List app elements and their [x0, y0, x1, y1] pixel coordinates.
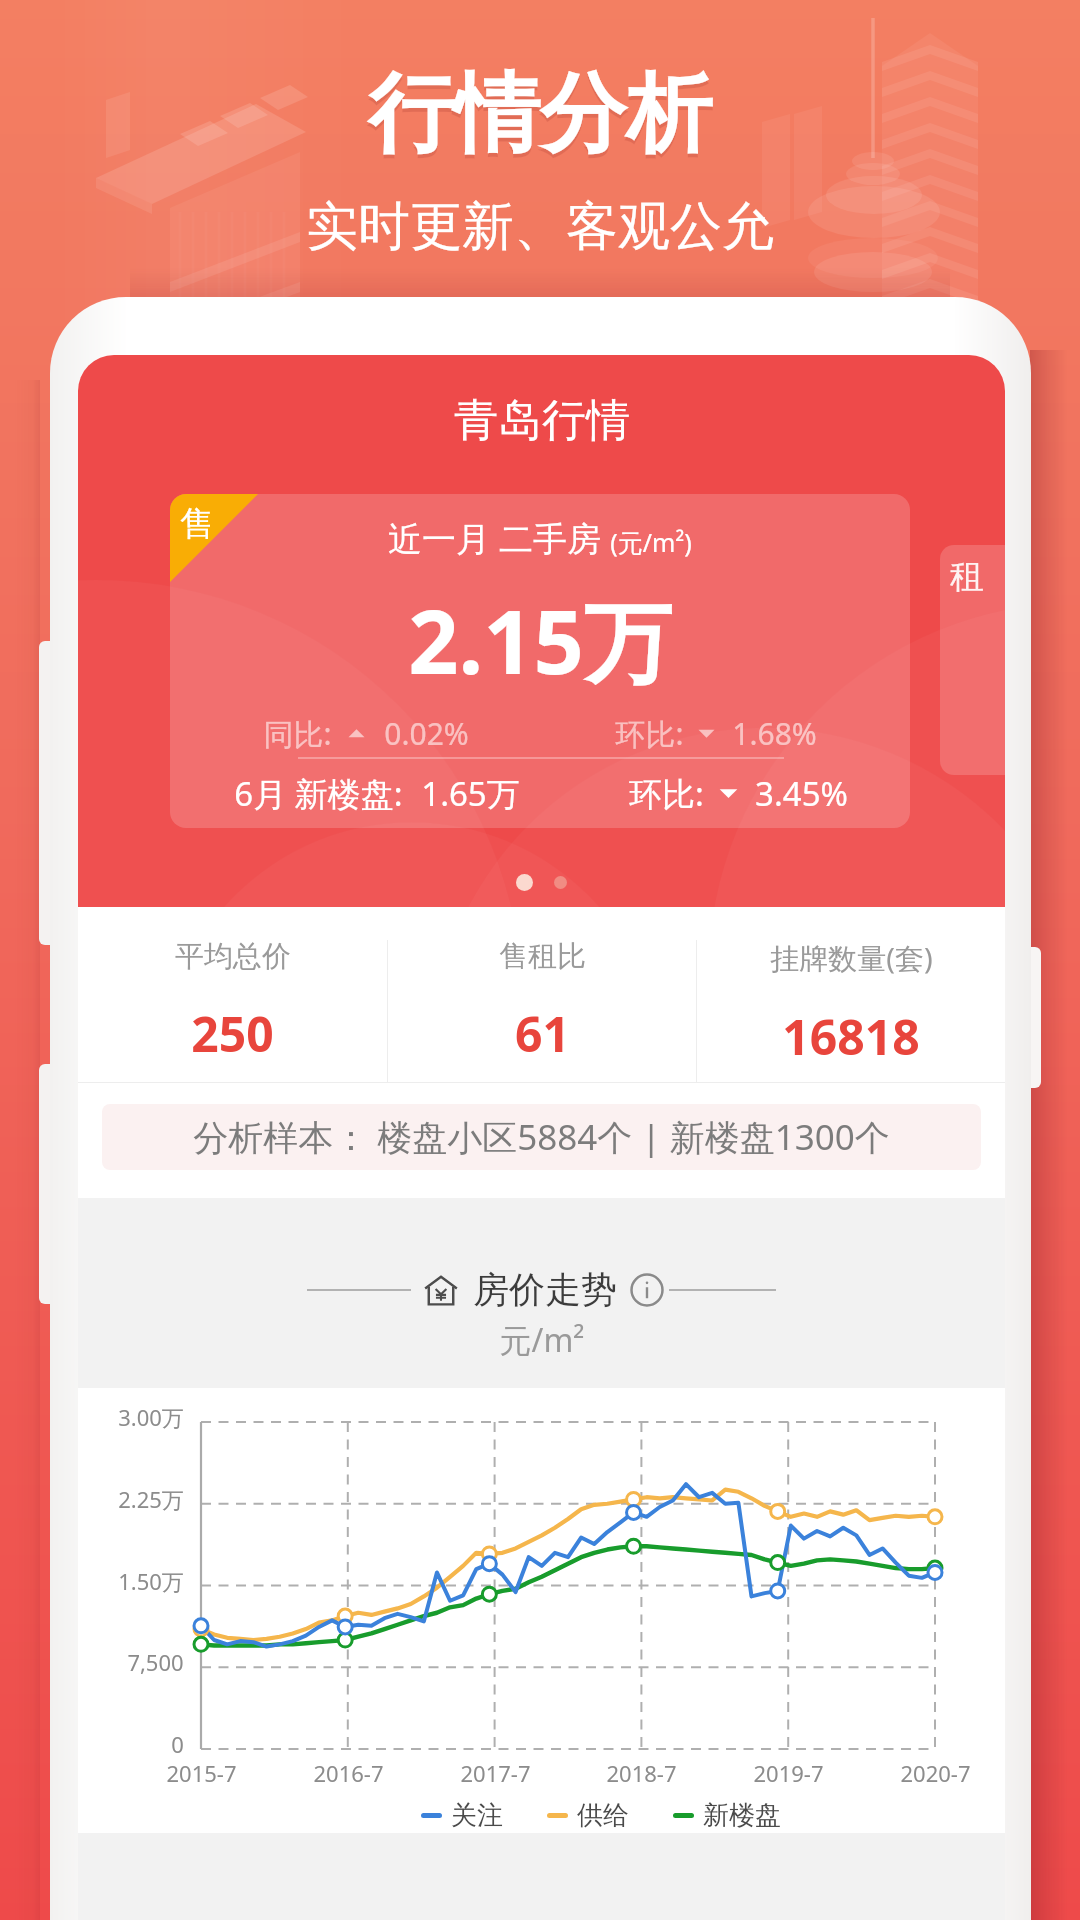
button[interactable]: 供给	[547, 1799, 629, 1832]
button[interactable]: Page 2	[554, 876, 567, 889]
staticText: 1.68%	[732, 713, 817, 754]
button[interactable]: 挂牌数量(套)	[697, 938, 1005, 1069]
staticText: 元/m²	[499, 1318, 585, 1362]
staticText: 250	[191, 1001, 274, 1066]
staticText: 行情分析	[368, 60, 712, 168]
staticText: 售	[180, 502, 214, 545]
staticText: 实时更新、客观公允	[306, 194, 774, 260]
staticText: 2.15万	[408, 580, 672, 700]
staticText: 3.45%	[755, 771, 848, 816]
staticText: 2018-7	[606, 1758, 677, 1788]
staticText: 16818	[782, 1004, 920, 1069]
staticText: 平均总价	[175, 938, 291, 975]
staticText: 3.00万	[118, 1402, 184, 1432]
staticText: 近一月 二手房	[388, 515, 601, 561]
button[interactable]: 租	[940, 545, 1005, 775]
staticText: 2.25万	[118, 1484, 184, 1514]
staticText: 挂牌数量(套)	[770, 938, 933, 978]
staticText: 1.65万	[421, 771, 520, 816]
staticText: 7,500	[127, 1647, 184, 1677]
button[interactable]: 分析样本： 楼盘小区5884个 | 新楼盘1300个	[102, 1104, 981, 1170]
button[interactable]: 青岛行情	[78, 369, 1005, 453]
staticText: 售租比	[499, 938, 586, 975]
staticText: 2020-7	[900, 1758, 971, 1788]
button[interactable]: 新楼盘	[673, 1799, 781, 1832]
staticText: 分析样本： 楼盘小区5884个 | 新楼盘1300个	[193, 1113, 890, 1161]
button[interactable]: 售租比	[388, 938, 696, 1066]
staticText: (元/m²)	[610, 525, 692, 559]
button[interactable]: 平均总价	[78, 938, 387, 1066]
staticText: 2017-7	[460, 1758, 531, 1788]
staticText: 供给	[577, 1799, 629, 1832]
staticText: 61	[515, 1001, 570, 1066]
staticText: 0.02%	[384, 713, 469, 754]
staticText: 新楼盘	[703, 1799, 781, 1832]
button[interactable]: Info	[630, 1273, 664, 1307]
staticText: 租	[950, 555, 984, 598]
button[interactable]: Page 1	[516, 874, 533, 891]
button[interactable]: 售	[170, 494, 910, 828]
staticText: 6月 新楼盘:	[234, 771, 403, 816]
staticText: 青岛行情	[454, 393, 630, 448]
staticText: 1.50万	[118, 1566, 184, 1596]
staticText: 房价走势	[473, 1267, 617, 1312]
staticText: 0	[171, 1729, 184, 1759]
button[interactable]: 关注	[421, 1799, 503, 1832]
staticText: 环比:	[615, 713, 684, 754]
staticText: 2019-7	[753, 1758, 824, 1788]
staticText: 环比:	[629, 771, 704, 816]
staticText: 关注	[451, 1799, 503, 1832]
staticText: 行情分析	[368, 64, 712, 172]
staticText: 2016-7	[313, 1758, 384, 1788]
staticText: 同比:	[263, 713, 332, 754]
staticText: 2015-7	[166, 1758, 237, 1788]
